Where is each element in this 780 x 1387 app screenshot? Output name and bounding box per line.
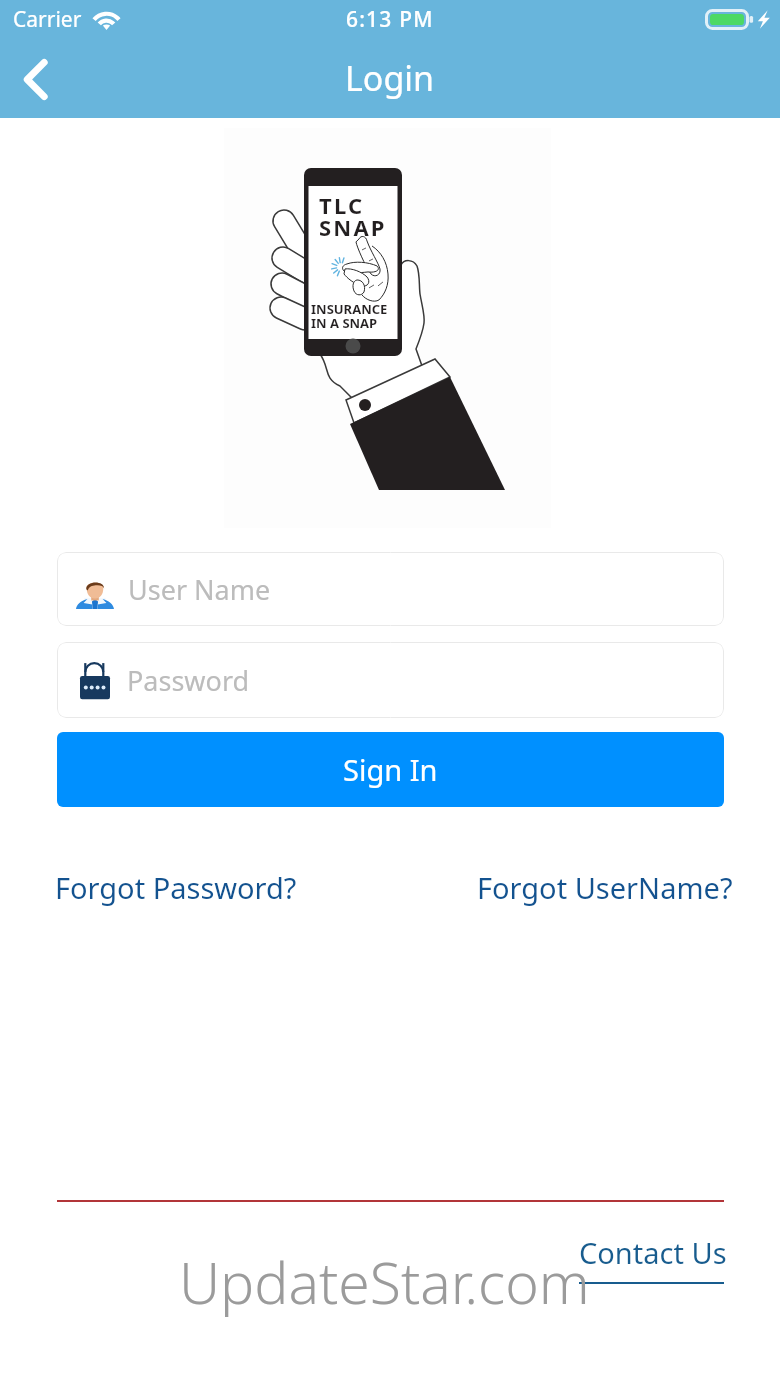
staticText: SNAP <box>319 212 387 242</box>
staticText: Login <box>345 55 435 101</box>
staticText: INSURANCE IN A SNAP <box>311 300 388 332</box>
staticText: Password <box>127 662 250 699</box>
staticText: 6:13 PM <box>346 5 434 34</box>
button[interactable]: User Name <box>57 552 724 626</box>
button[interactable]: Sign In <box>57 732 724 807</box>
staticText: UpdateStar.com <box>179 1243 590 1321</box>
button[interactable]: Back <box>0 40 70 118</box>
staticText: Contact Us <box>579 1233 727 1272</box>
staticText: Carrier <box>13 5 82 34</box>
staticText: Sign In <box>343 750 438 789</box>
button[interactable]: Password <box>57 642 724 718</box>
staticText: User Name <box>128 571 271 608</box>
staticText: TLC <box>319 190 365 220</box>
staticText: Forgot Password? <box>55 868 297 907</box>
button[interactable]: Forgot UserName? <box>477 868 733 907</box>
button[interactable]: Forgot Password? <box>55 868 297 907</box>
button[interactable]: Contact Us <box>579 1233 727 1284</box>
staticText: Forgot UserName? <box>477 868 733 907</box>
